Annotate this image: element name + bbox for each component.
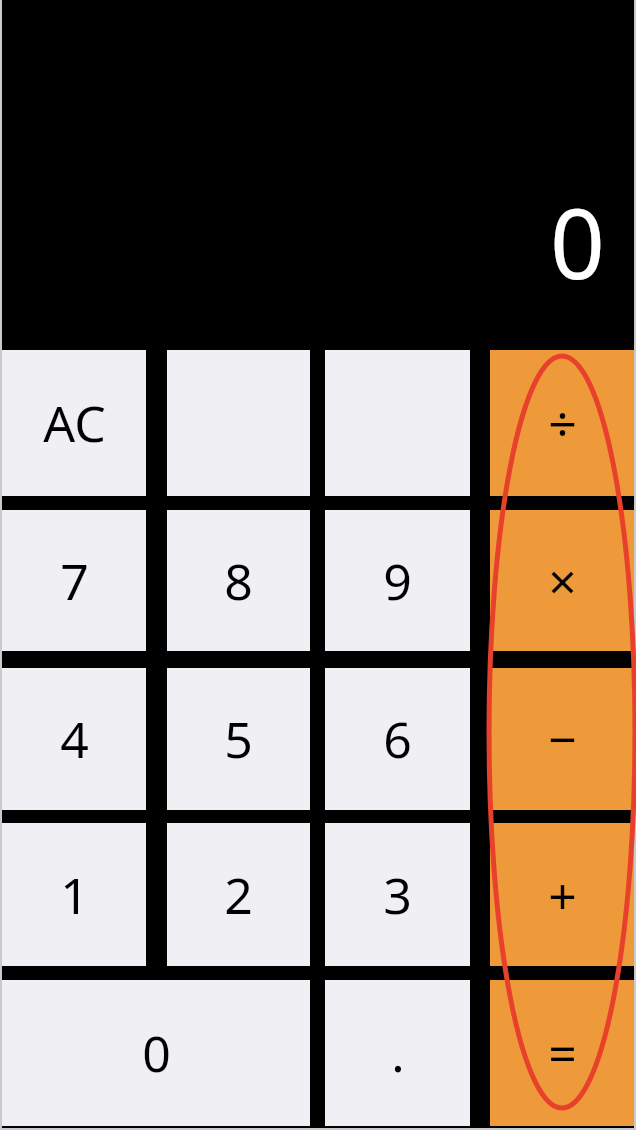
staticText: 7 <box>60 547 89 615</box>
button[interactable]: 0 <box>2 980 310 1126</box>
button[interactable]: 6 <box>325 668 470 810</box>
staticText: 8 <box>224 547 253 615</box>
button[interactable]: AC <box>2 350 146 496</box>
button[interactable]: . <box>325 980 470 1126</box>
button[interactable]: Divide <box>490 350 634 496</box>
button[interactable]: Multiply <box>490 510 634 651</box>
button[interactable]: Minus <box>490 668 634 810</box>
staticText: = <box>548 1019 577 1087</box>
button[interactable]: 1 <box>2 823 146 966</box>
staticText: 2 <box>224 861 253 929</box>
staticText: . <box>391 1019 405 1087</box>
button[interactable]: 8 <box>167 510 310 651</box>
staticText: 6 <box>383 705 412 773</box>
staticText: 9 <box>383 547 412 615</box>
button[interactable]: Equals <box>490 980 634 1126</box>
staticText: − <box>548 705 577 773</box>
button[interactable]: Plus <box>490 823 634 966</box>
button[interactable]: 3 <box>325 823 470 966</box>
staticText: + <box>548 861 577 929</box>
button[interactable]: 9 <box>325 510 470 651</box>
staticText: 0 <box>550 176 605 307</box>
staticText: 0 <box>142 1019 171 1087</box>
button[interactable]: 5 <box>167 668 310 810</box>
button[interactable]: 7 <box>2 510 146 651</box>
staticText: ÷ <box>548 389 577 457</box>
staticText: AC <box>43 389 106 457</box>
staticText: × <box>548 547 577 615</box>
staticText: 3 <box>383 861 412 929</box>
staticText: 1 <box>60 861 89 929</box>
staticText: 5 <box>224 705 253 773</box>
staticText: 4 <box>60 705 89 773</box>
button[interactable]: 2 <box>167 823 310 966</box>
button[interactable]: 4 <box>2 668 146 810</box>
